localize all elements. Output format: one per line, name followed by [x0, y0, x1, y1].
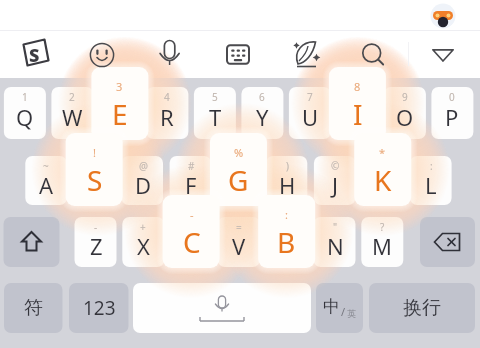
button[interactable]: R [146, 87, 188, 139]
button[interactable]: S [66, 133, 123, 206]
staticText: = [236, 220, 242, 234]
staticText: 8 [354, 79, 361, 94]
staticText: 9 [402, 90, 408, 104]
staticText: Q [16, 102, 34, 132]
button[interactable]: W [51, 87, 93, 139]
staticText: P [445, 102, 459, 132]
staticText: 2 [69, 90, 75, 104]
button[interactable]: L [410, 156, 452, 205]
staticText: L [425, 170, 437, 200]
staticText: S [29, 43, 40, 68]
button[interactable]: AI writing [291, 39, 321, 69]
staticText: C [183, 223, 201, 261]
staticText: ? [380, 220, 385, 234]
button[interactable]: Numbers [69, 283, 129, 333]
button[interactable]: D [122, 156, 164, 205]
staticText: / [341, 304, 346, 319]
staticText: * [379, 145, 386, 160]
button[interactable]: Chinese English toggle [316, 283, 363, 333]
button[interactable]: K [354, 133, 411, 206]
button[interactable]: B [258, 195, 315, 268]
button[interactable]: O [384, 87, 426, 139]
button[interactable]: Emoji [88, 41, 115, 68]
staticText: 123 [83, 295, 116, 321]
button[interactable]: H [266, 156, 308, 205]
staticText: M [372, 231, 392, 261]
button[interactable]: M [361, 217, 403, 267]
staticText: U [302, 102, 319, 132]
button[interactable]: Shift [4, 217, 60, 267]
staticText: : [430, 159, 433, 173]
staticText: # [188, 159, 195, 173]
button[interactable]: Keyboard layout [224, 41, 252, 69]
staticText: 1 [22, 90, 28, 104]
button[interactable]: Backspace [420, 217, 475, 267]
button[interactable]: A [25, 156, 67, 205]
button[interactable]: P [431, 87, 473, 139]
staticText: ~ [43, 159, 49, 173]
staticText: N [327, 231, 344, 261]
staticText: 0 [449, 90, 455, 104]
button[interactable]: Voice input [156, 38, 183, 65]
staticText: 3 [116, 79, 123, 94]
staticText: 6 [259, 90, 265, 104]
staticText: R [160, 102, 174, 132]
staticText: K [374, 161, 392, 199]
button[interactable]: X [122, 217, 164, 267]
button[interactable]: G [210, 133, 267, 206]
staticText: G [228, 161, 249, 199]
staticText: + [140, 220, 146, 234]
staticText: @ [139, 159, 148, 173]
staticText: W [62, 102, 83, 132]
staticText: " [333, 220, 338, 234]
button[interactable]: Symbols [4, 283, 63, 333]
button[interactable]: Search [358, 38, 386, 66]
button[interactable]: V [218, 217, 260, 267]
staticText: I [353, 95, 363, 133]
staticText: ) [286, 159, 289, 173]
staticText: 7 [307, 90, 313, 104]
staticText: D [135, 170, 152, 200]
button[interactable]: Q [4, 87, 46, 139]
staticText: B [277, 223, 296, 261]
button[interactable]: F [170, 156, 212, 205]
staticText: : [285, 207, 288, 222]
button[interactable]: I [329, 67, 386, 140]
staticText: 中 [323, 296, 340, 317]
button[interactable]: T [194, 87, 236, 139]
staticText: X [137, 231, 150, 261]
button[interactable]: Z [75, 217, 117, 267]
staticText: J [332, 170, 339, 200]
staticText: Z [90, 231, 103, 261]
staticText: 英 [347, 308, 356, 319]
staticText: % [234, 145, 244, 160]
staticText: E [112, 95, 128, 133]
staticText: Y [256, 102, 269, 132]
button[interactable]: Space [133, 283, 311, 333]
staticText: S [87, 161, 103, 199]
staticText: F [185, 170, 197, 200]
button[interactable]: J [314, 156, 356, 205]
button[interactable]: Y [241, 87, 283, 139]
button[interactable]: E [91, 67, 148, 140]
staticText: O [396, 102, 414, 132]
button[interactable]: Profile [429, 0, 457, 31]
button[interactable]: N [314, 217, 356, 267]
button[interactable]: U [289, 87, 331, 139]
staticText: T [209, 102, 222, 132]
staticText: © [331, 159, 340, 173]
staticText: ! [93, 145, 96, 160]
button[interactable]: Enter [369, 283, 475, 333]
staticText: 4 [164, 90, 170, 104]
staticText: H [279, 170, 296, 200]
staticText: A [39, 170, 54, 200]
staticText: 符 [24, 296, 43, 320]
staticText: 5 [212, 90, 218, 104]
staticText: 换行 [403, 296, 441, 320]
button[interactable]: C [163, 195, 220, 268]
button[interactable]: Sogou input [20, 37, 51, 69]
staticText: - [190, 207, 194, 222]
button[interactable]: Hide keyboard [429, 41, 457, 69]
staticText: V [232, 231, 246, 261]
staticText: - [94, 220, 98, 234]
